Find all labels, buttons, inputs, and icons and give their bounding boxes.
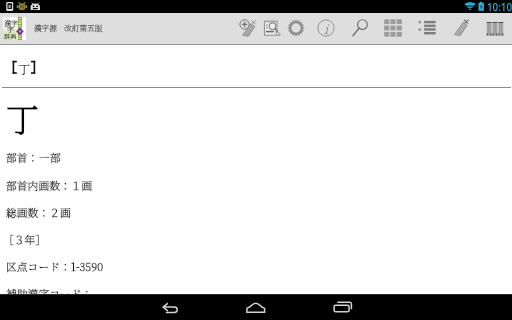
button[interactable]: List view xyxy=(415,13,439,44)
staticText: 漢字 xyxy=(4,18,18,28)
staticText: 総画数：２画 xyxy=(6,205,71,221)
staticText: i xyxy=(324,19,329,37)
button[interactable]: Home xyxy=(235,294,277,320)
staticText: 字 xyxy=(7,24,14,34)
staticText: 10:10 xyxy=(487,1,512,14)
staticText: 部首内画数：１画 xyxy=(6,178,93,194)
button[interactable]: Settings xyxy=(284,13,308,44)
button[interactable]: Grid view xyxy=(381,13,405,44)
staticText: 丁 xyxy=(6,94,39,141)
button[interactable]: Add new entry xyxy=(236,13,260,44)
staticText: 丁 xyxy=(18,60,31,77)
button[interactable]: 一 xyxy=(39,150,50,165)
button[interactable]: Recent apps xyxy=(321,294,363,320)
button[interactable]: Search xyxy=(349,13,373,44)
button[interactable]: Lookup entry xyxy=(260,13,284,44)
button[interactable]: Handwriting input xyxy=(449,13,473,44)
staticText: 漢字源 改訂第五版 xyxy=(34,22,103,33)
button[interactable]: Information xyxy=(314,13,338,44)
staticText: 辞典 xyxy=(4,32,17,41)
button[interactable]: Back xyxy=(149,294,191,320)
button[interactable]: Page view xyxy=(483,13,507,44)
staticText: 区点コード：1-3590 xyxy=(6,259,104,275)
staticText: 部首： xyxy=(6,150,39,166)
staticText: 補助漢字コード： xyxy=(6,286,93,302)
staticText: ［３年］ xyxy=(3,232,47,248)
staticText: 部 xyxy=(50,150,61,166)
